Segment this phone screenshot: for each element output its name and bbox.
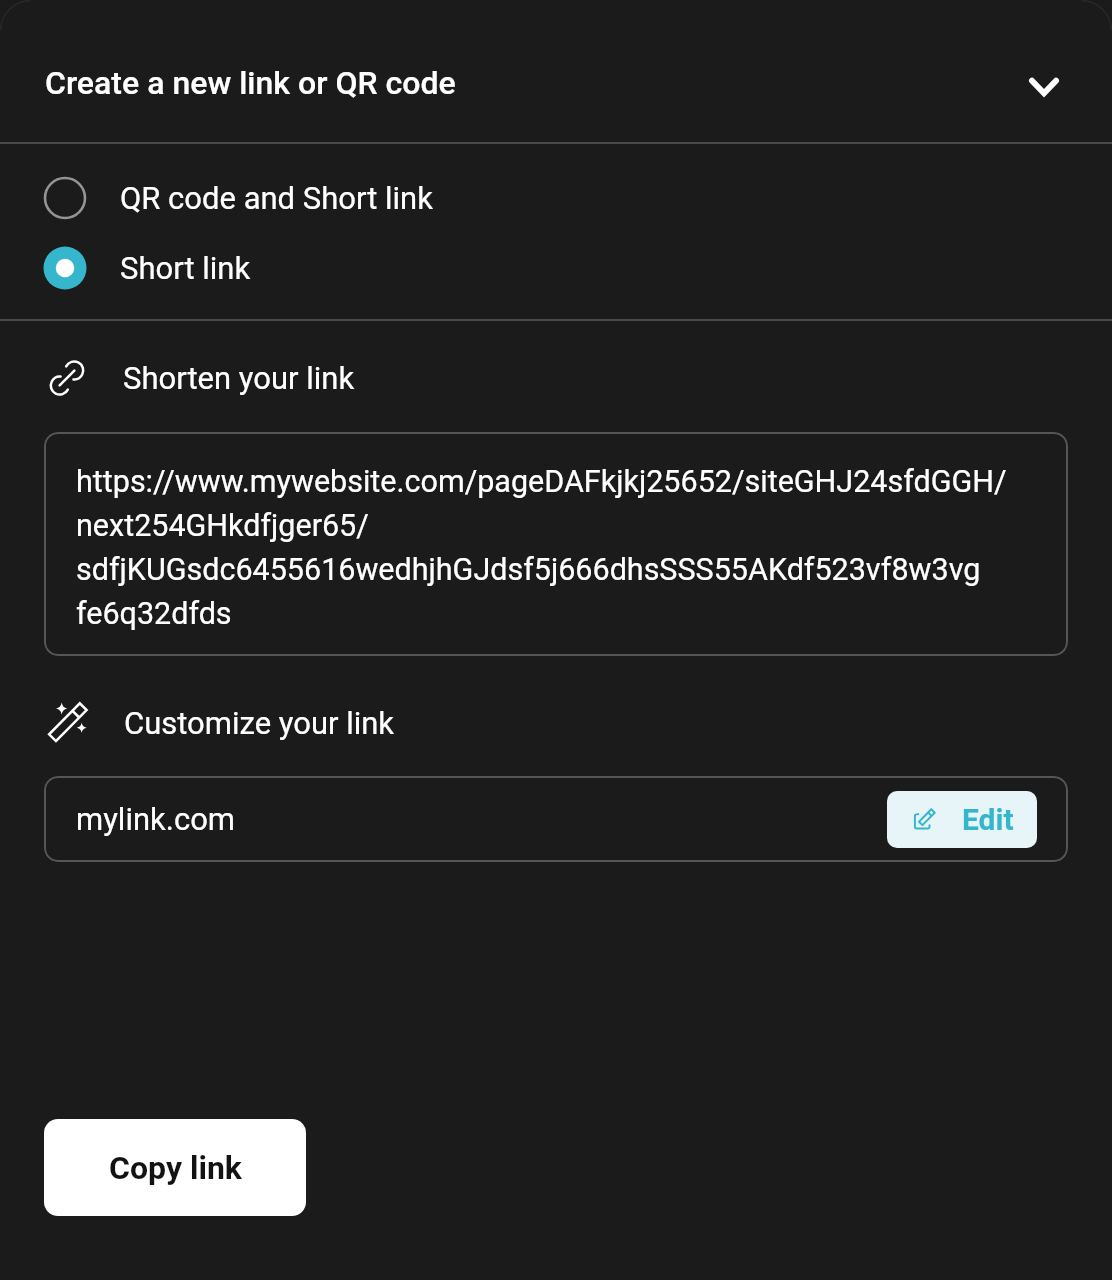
button[interactable]: mylink.com [44,776,1068,862]
staticText: Edit [962,802,1014,837]
button[interactable]: QR code and Short link [0,163,1112,233]
button[interactable]: Copy link [44,1119,306,1216]
staticText: Shorten your link [123,360,355,396]
button[interactable]: Edit [887,791,1037,848]
staticText: mylink.com [76,801,236,837]
staticText: Create a new link or QR code [45,64,456,102]
button[interactable]: Create a new link or QR code [0,0,1112,142]
staticText: QR code and Short link [120,180,433,216]
staticText: Copy link [109,1149,242,1187]
button[interactable]: https://www.mywebsite.com/pageDAFkjkj256… [44,432,1068,656]
staticText: Customize your link [124,705,395,741]
other: Collapse section [1024,72,1064,102]
staticText: Short link [120,250,251,286]
button[interactable]: Short link [0,233,1112,303]
staticText: https://www.mywebsite.com/pageDAFkjkj256… [76,458,1048,634]
